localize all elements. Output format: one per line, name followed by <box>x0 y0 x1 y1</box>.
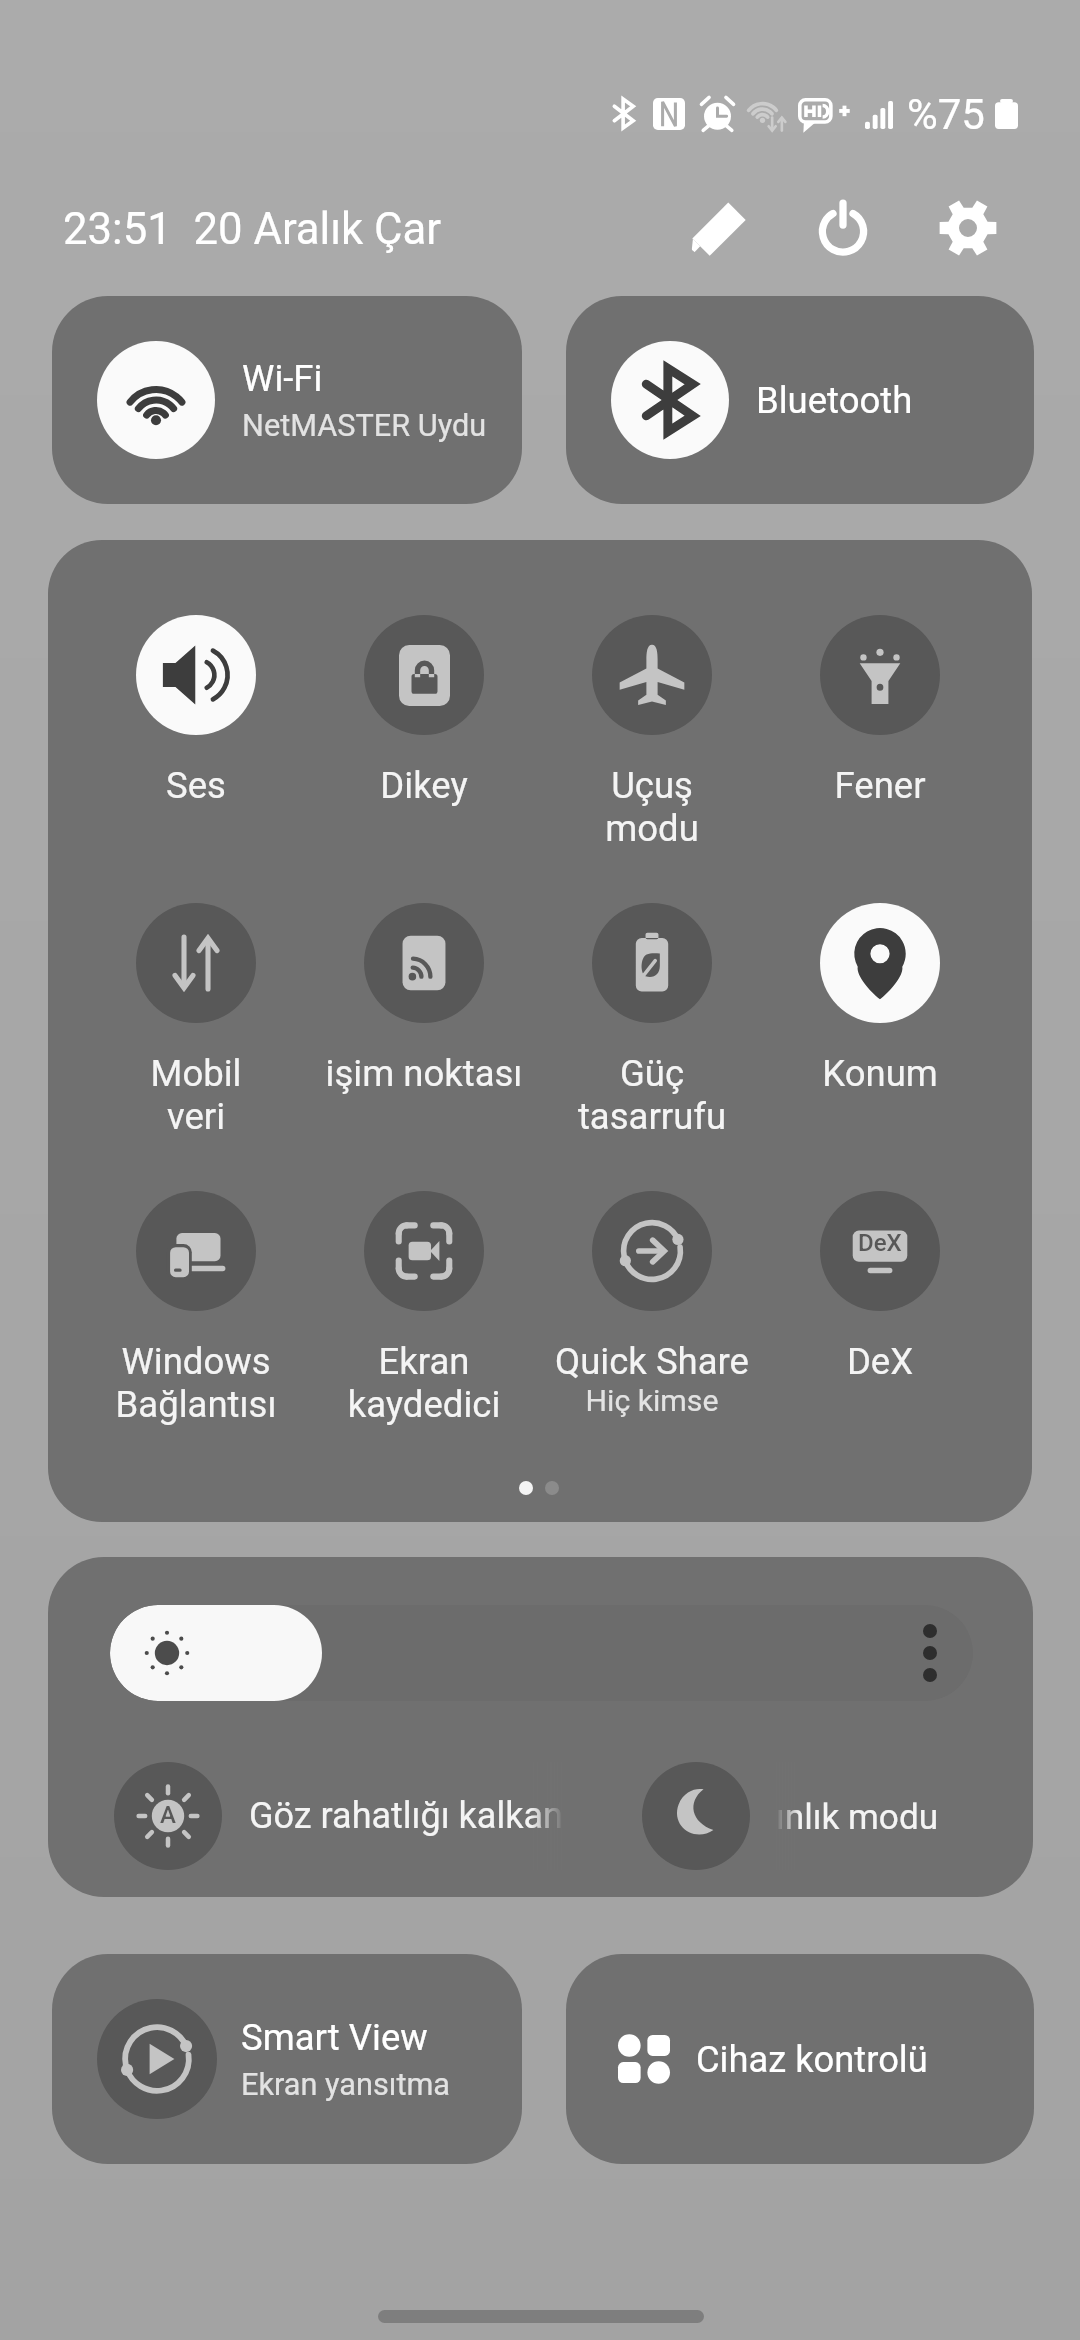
button[interactable]: Ekran <box>312 1191 536 1441</box>
button[interactable]: Ses <box>84 615 308 865</box>
staticText: Quick Share <box>518 1340 786 1383</box>
staticText: Güç <box>540 1052 764 1095</box>
button[interactable] <box>110 1605 973 1701</box>
button[interactable]: Güç <box>540 903 764 1153</box>
button[interactable]: A <box>114 1762 564 1870</box>
button[interactable]: Konum <box>768 903 992 1153</box>
staticText: Mobil <box>84 1052 308 1095</box>
staticText: A <box>160 1801 176 1829</box>
button[interactable]: Mobil <box>84 903 308 1153</box>
button[interactable]: Settings <box>932 197 1004 259</box>
button[interactable]: Bluetooth <box>566 296 1034 504</box>
staticText: Bluetooth <box>756 379 913 422</box>
button[interactable]: işim noktası <box>290 903 558 1153</box>
button[interactable]: Smart View <box>52 1954 522 2164</box>
staticText: NetMASTER Uydu <box>242 408 487 444</box>
button[interactable]: Wi-Fi <box>52 296 522 504</box>
staticText: Uçuş <box>540 764 764 807</box>
staticText: işim noktası <box>290 1052 558 1095</box>
staticText: Konum <box>768 1052 992 1095</box>
staticText: tasarrufu <box>540 1095 764 1138</box>
staticText: veri <box>84 1095 308 1138</box>
button[interactable]: ınlık modu <box>642 1762 1033 1870</box>
button[interactable]: DeX <box>768 1191 992 1441</box>
button[interactable]: Uçuş <box>540 615 764 865</box>
staticText: DeX <box>768 1340 992 1383</box>
button[interactable]: Windows <box>84 1191 308 1441</box>
button[interactable]: Power <box>807 197 879 259</box>
staticText: Göz rahatlığı kalkanı <box>249 1795 564 1837</box>
staticText: Ses <box>84 764 308 807</box>
staticText: Dikey <box>312 764 536 807</box>
staticText: Fener <box>768 764 992 807</box>
staticText: Cihaz kontrolü <box>696 2038 928 2081</box>
staticText: ınlık modu <box>776 1796 939 1837</box>
staticText: modu <box>540 807 764 850</box>
staticText: Windows <box>84 1340 308 1383</box>
staticText: Ekran <box>312 1340 536 1383</box>
staticText: 23:51 20 Aralık Çar <box>63 203 442 254</box>
staticText: Hiç kimse <box>518 1383 786 1418</box>
staticText: Wi-Fi <box>242 357 323 400</box>
staticText: kaydedici <box>312 1383 536 1426</box>
staticText: Smart View <box>241 2016 428 2059</box>
button[interactable]: Dikey <box>312 615 536 865</box>
button[interactable]: Edit <box>683 197 755 259</box>
staticText: Bağlantısı <box>84 1383 308 1426</box>
staticText: %75 <box>907 90 985 139</box>
button[interactable]: Quick Share <box>518 1191 786 1441</box>
staticText: Ekran yansıtma <box>241 2067 451 2103</box>
staticText: DeX <box>858 1229 902 1257</box>
button[interactable]: Fener <box>768 615 992 865</box>
button[interactable]: Cihaz kontrolü <box>566 1954 1034 2164</box>
